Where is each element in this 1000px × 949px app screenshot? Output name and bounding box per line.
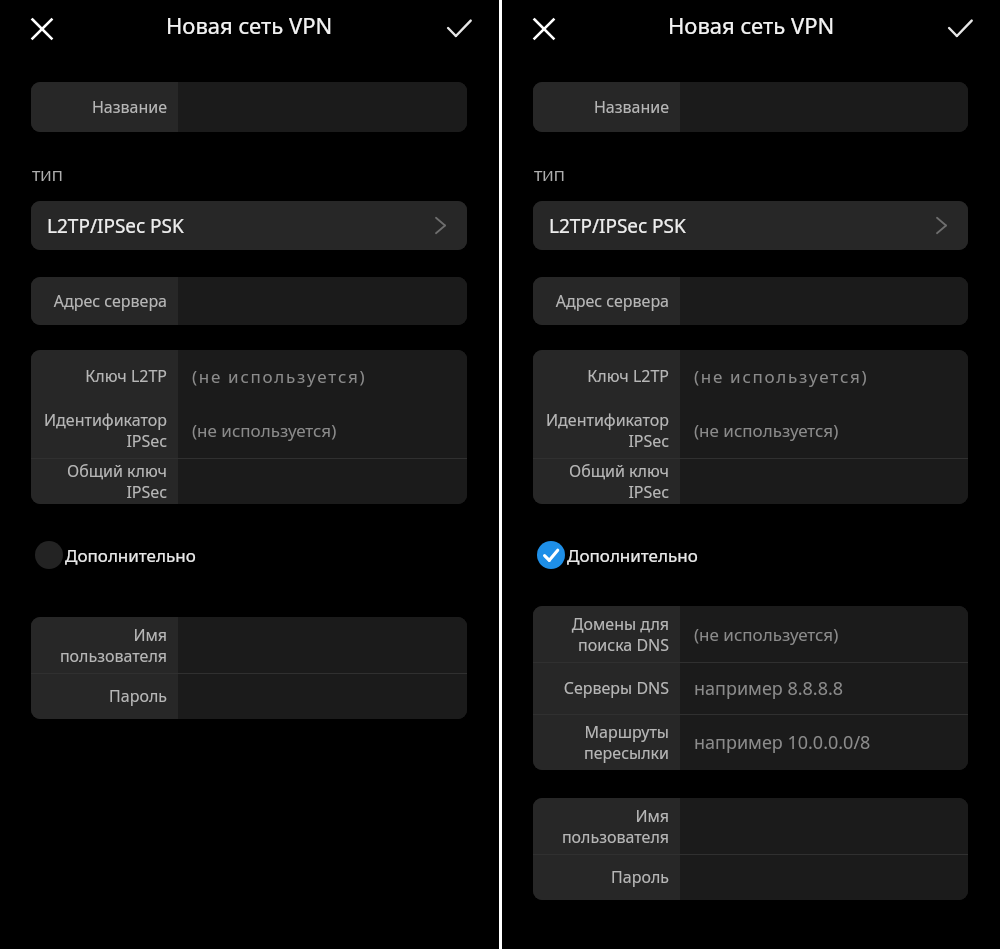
staticText: Идентификатор IPSec (31, 409, 167, 452)
staticText: ( н е и с п о л ь з у е т с я ) (192, 365, 365, 388)
button[interactable]: Дополнительно (33, 537, 198, 573)
staticText: Имя пользователя (533, 805, 669, 848)
staticText: Адрес сервера (31, 290, 167, 312)
staticText: L2TP/IPSec PSK (549, 213, 686, 239)
button[interactable]: L2TP/IPSec PSK (31, 201, 467, 250)
button[interactable]: Пароль (533, 854, 968, 900)
button[interactable]: Имя пользователя (31, 617, 467, 673)
staticText: Общий ключ IPSec (31, 460, 167, 503)
button[interactable]: Маршруты пересылки (533, 714, 968, 770)
button[interactable]: Закрыть (522, 7, 566, 51)
staticText: Ключ L2TP (31, 365, 167, 387)
button[interactable]: Название (533, 82, 968, 132)
staticText: Имя пользователя (31, 624, 167, 667)
staticText: Название (533, 96, 669, 118)
staticText: ТИП (534, 165, 565, 185)
staticText: ( н е и с п о л ь з у е т с я ) (694, 365, 867, 388)
button[interactable]: Идентификатор IPSec (31, 402, 467, 458)
button[interactable]: Сохранить (938, 7, 982, 51)
staticText: Домены для поиска DNS (533, 613, 669, 656)
staticText: Название (31, 96, 167, 118)
staticText: Пароль (533, 866, 669, 888)
button[interactable]: Ключ L2TP (31, 350, 467, 402)
button[interactable]: Сохранить (437, 7, 481, 51)
button[interactable]: Общий ключ IPSec (31, 458, 467, 504)
staticText: ТИП (32, 165, 63, 185)
button[interactable]: L2TP/IPSec PSK (533, 201, 968, 250)
staticText: например 8.8.8.8 (694, 676, 844, 701)
staticText: Маршруты пересылки (533, 721, 669, 764)
button[interactable]: Адрес сервера (31, 277, 467, 325)
button[interactable]: Домены для поиска DNS (533, 606, 968, 662)
staticText: (не используется) (694, 419, 839, 442)
staticText: Новая сеть VPN (166, 10, 333, 40)
staticText: например 10.0.0.0/8 (694, 730, 871, 755)
staticText: Новая сеть VPN (668, 10, 835, 40)
staticText: Ключ L2TP (533, 365, 669, 387)
staticText: Идентификатор IPSec (533, 409, 669, 452)
button[interactable]: Закрыть (20, 7, 64, 51)
button[interactable]: Серверы DNS (533, 662, 968, 714)
staticText: Дополнительно (567, 544, 698, 567)
staticText: (не используется) (192, 419, 337, 442)
button[interactable]: Ключ L2TP (533, 350, 968, 402)
staticText: Пароль (31, 685, 167, 707)
staticText: Общий ключ IPSec (533, 460, 669, 503)
staticText: Адрес сервера (533, 290, 669, 312)
button[interactable]: Общий ключ IPSec (533, 458, 968, 504)
staticText: Дополнительно (65, 544, 196, 567)
staticText: Серверы DNS (533, 677, 669, 699)
button[interactable]: Дополнительно (535, 537, 700, 573)
button[interactable]: Адрес сервера (533, 277, 968, 325)
button[interactable]: Пароль (31, 673, 467, 719)
button[interactable]: Название (31, 82, 467, 132)
staticText: L2TP/IPSec PSK (47, 213, 184, 239)
staticText: (не используется) (694, 623, 839, 646)
button[interactable]: Идентификатор IPSec (533, 402, 968, 458)
button[interactable]: Имя пользователя (533, 798, 968, 854)
